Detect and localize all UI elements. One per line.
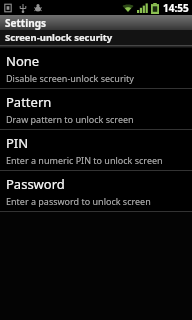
- staticText: Enter a numeric PIN to unlock screen: [6, 154, 163, 166]
- staticText: Draw pattern to unlock screen: [6, 113, 134, 125]
- staticText: 14:55: [163, 1, 189, 15]
- staticText: Enter a password to unlock screen: [6, 195, 151, 207]
- staticText: Disable screen-unlock security: [6, 72, 134, 84]
- staticText: None: [6, 52, 40, 70]
- staticText: Pattern: [6, 93, 52, 111]
- button[interactable]: PIN: [0, 130, 192, 170]
- staticText: Password: [6, 175, 65, 193]
- button[interactable]: Password: [0, 171, 192, 211]
- staticText: PIN: [6, 134, 29, 152]
- button[interactable]: None: [0, 48, 192, 88]
- staticText: Settings: [5, 16, 46, 30]
- staticText: Screen-unlock security: [5, 31, 113, 44]
- button[interactable]: Pattern: [0, 89, 192, 129]
